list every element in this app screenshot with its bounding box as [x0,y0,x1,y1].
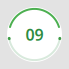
button[interactable]: Progress 09 [0,0,69,69]
staticText: 09 [25,24,43,45]
